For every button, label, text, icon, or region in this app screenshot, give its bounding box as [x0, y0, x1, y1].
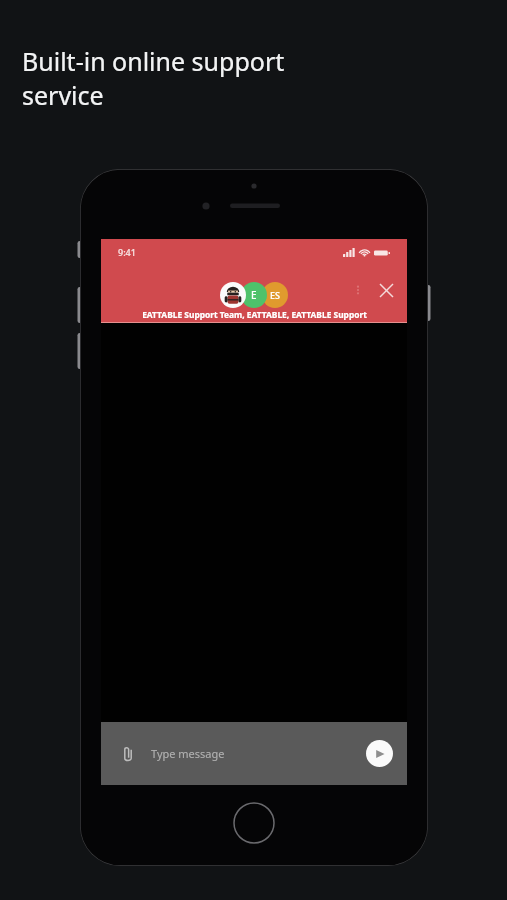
button[interactable]: Send	[366, 740, 393, 767]
staticText: ES	[270, 289, 280, 301]
staticText: E	[251, 288, 257, 302]
button[interactable]: Type message	[151, 722, 366, 785]
button[interactable]: Home	[233, 802, 275, 844]
staticText: service	[22, 78, 104, 112]
button[interactable]: Attach file	[115, 741, 141, 767]
staticText: Type message	[151, 746, 225, 761]
button[interactable]: Close	[373, 277, 399, 303]
staticText: EATTABLE Support Team, EATTABLE, EATTABL…	[142, 309, 367, 320]
staticText: 9:41	[118, 246, 136, 258]
staticText: Built-in online support	[22, 44, 285, 78]
button[interactable]: Support team members	[220, 282, 288, 308]
button[interactable]: More options	[347, 279, 369, 301]
